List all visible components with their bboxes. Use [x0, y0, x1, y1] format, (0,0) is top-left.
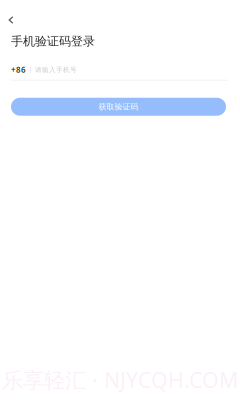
- staticText: 请输入手机号: [35, 66, 77, 74]
- button[interactable]: +86: [11, 65, 228, 81]
- staticText: 获取验证码: [98, 102, 138, 112]
- button[interactable]: 返回: [0, 0, 21, 29]
- staticText: 手机验证码登录: [11, 34, 95, 49]
- staticText: +86: [11, 64, 26, 75]
- button[interactable]: 获取验证码: [11, 98, 226, 116]
- staticText: 乐享轻汇 · NJYCQH.COM: [2, 366, 238, 394]
